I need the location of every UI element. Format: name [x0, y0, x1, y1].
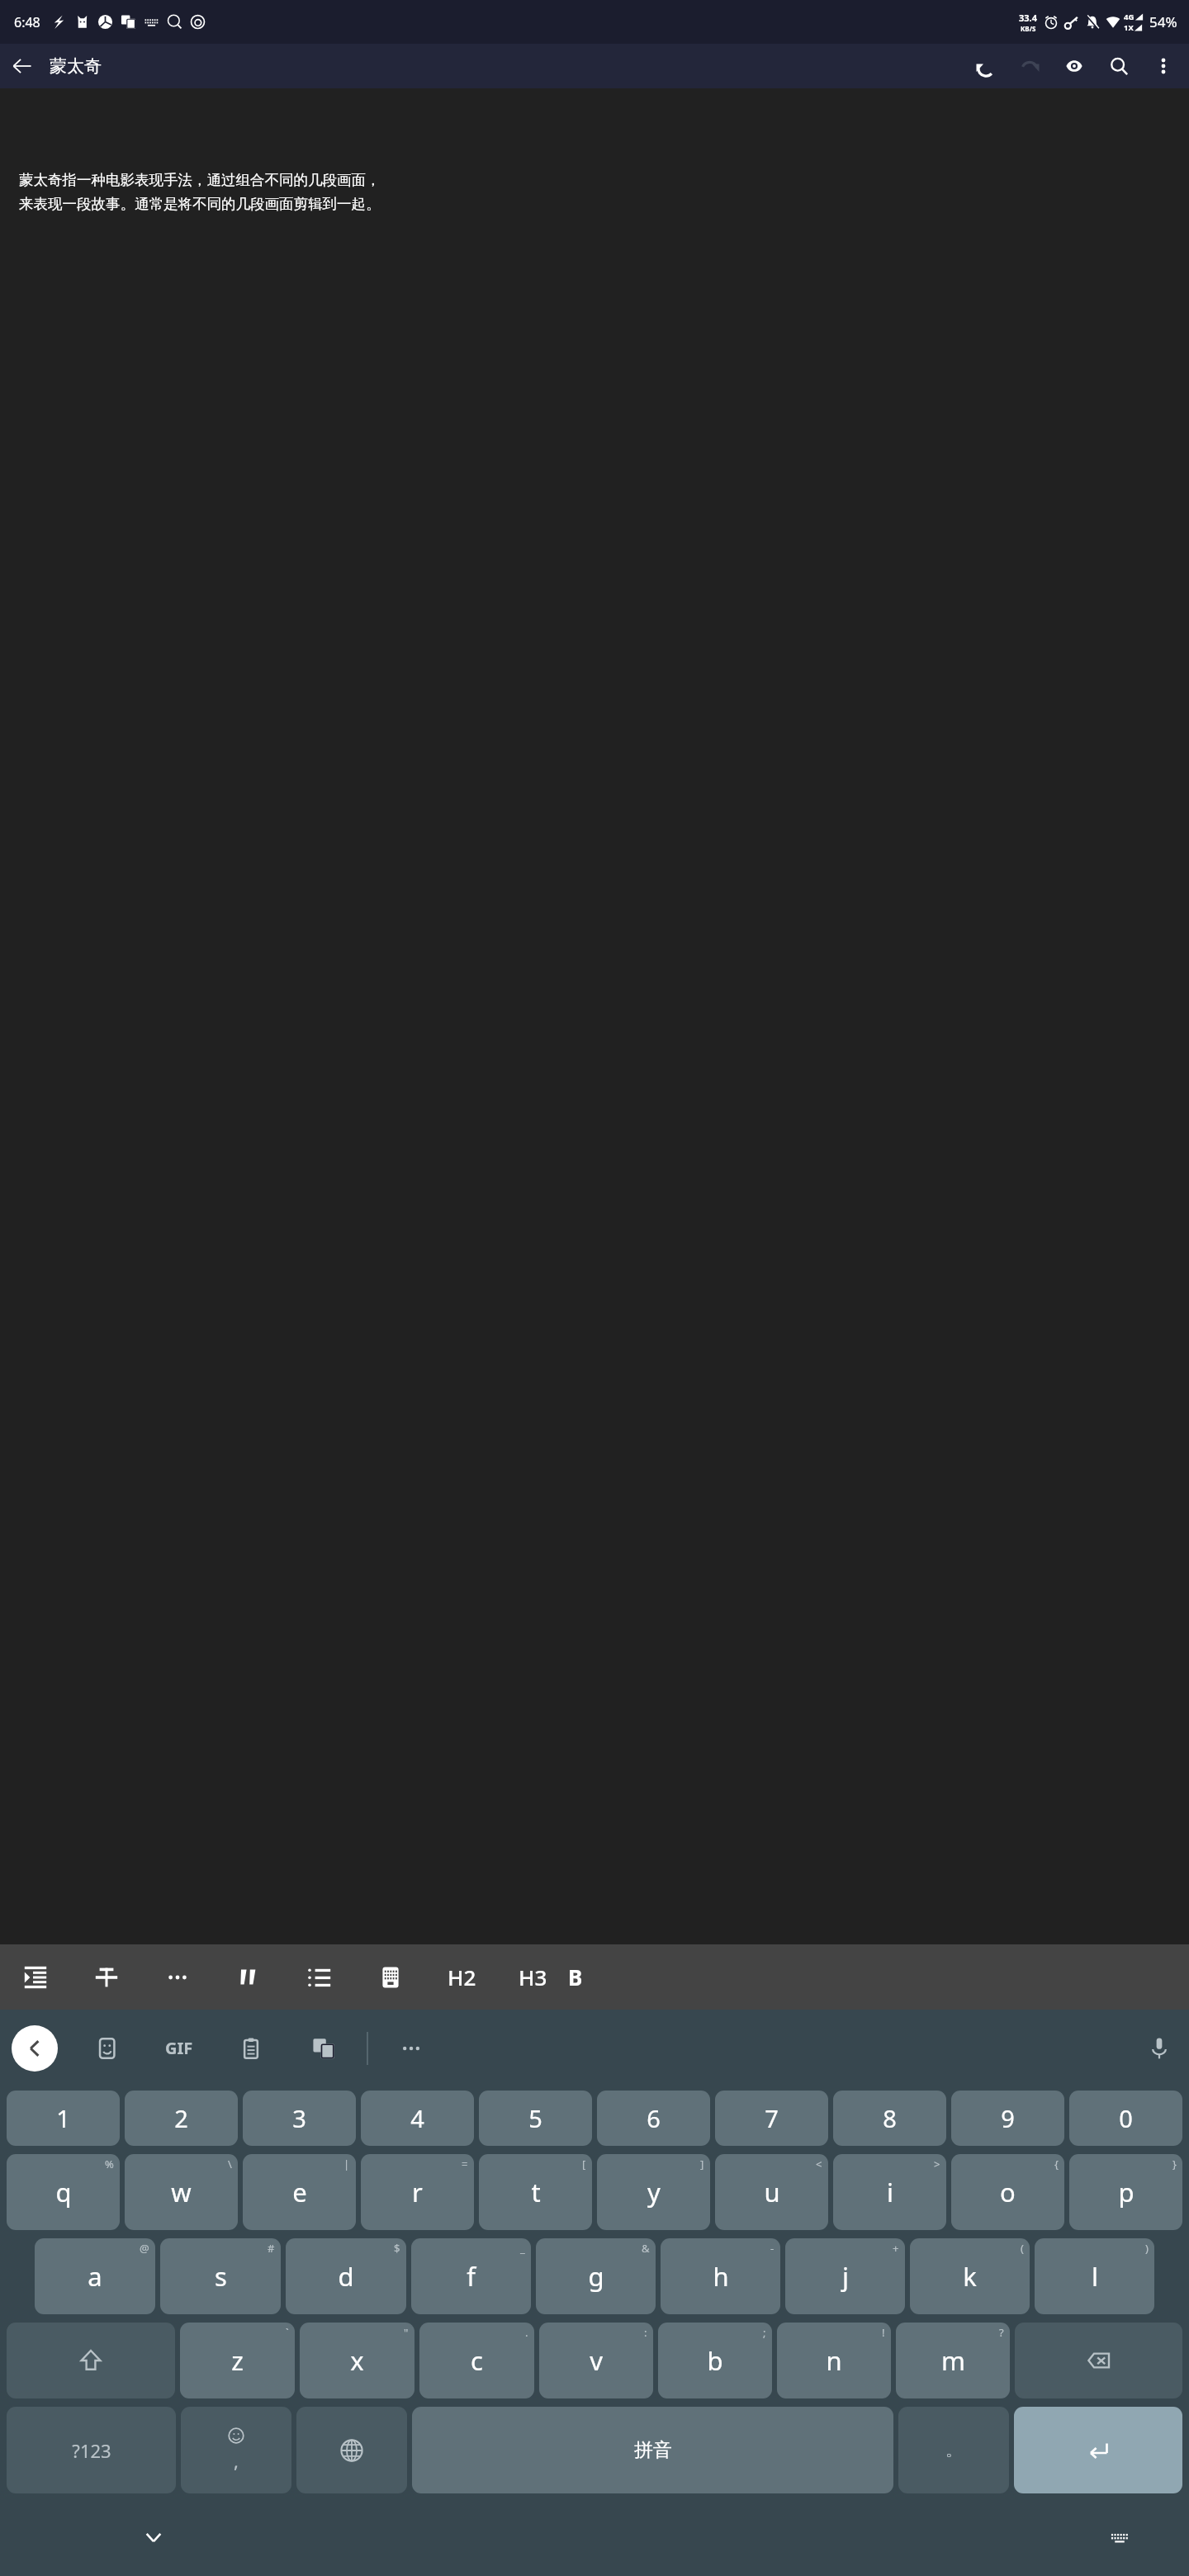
button[interactable]: s: [160, 2238, 281, 2314]
button[interactable]: Language: [296, 2407, 407, 2493]
staticText: \: [228, 2157, 232, 2171]
staticText: 。: [945, 2440, 962, 2460]
staticText: KB/S: [1021, 24, 1036, 33]
button[interactable]: 1: [7, 2091, 120, 2146]
button[interactable]: y: [597, 2154, 710, 2230]
button[interactable]: w: [125, 2154, 238, 2230]
staticText: 33.4: [1019, 12, 1037, 24]
button[interactable]: q: [7, 2154, 120, 2230]
button[interactable]: 拼音: [412, 2407, 893, 2493]
button[interactable]: Preview: [1052, 44, 1097, 88]
button[interactable]: Undo: [963, 44, 1007, 88]
staticText: }: [1172, 2157, 1177, 2171]
staticText: b: [707, 2343, 723, 2378]
button[interactable]: m: [896, 2323, 1010, 2398]
staticText: 拼音: [634, 2438, 672, 2462]
button[interactable]: k: [910, 2238, 1030, 2314]
button[interactable]: More: [393, 2030, 429, 2067]
button[interactable]: More: [142, 1944, 213, 2010]
staticText: H3: [519, 1963, 547, 1991]
button[interactable]: r: [361, 2154, 474, 2230]
staticText: g: [588, 2259, 604, 2294]
staticText: 2: [174, 2102, 188, 2134]
button[interactable]: c: [419, 2323, 534, 2398]
staticText: y: [647, 2175, 661, 2209]
button[interactable]: Redo: [1007, 44, 1052, 88]
button[interactable]: j: [785, 2238, 905, 2314]
button[interactable]: 7: [715, 2091, 828, 2146]
button[interactable]: i: [833, 2154, 946, 2230]
button[interactable]: Keyboard: [355, 1944, 426, 2010]
button[interactable]: 9: [951, 2091, 1064, 2146]
button[interactable]: GIF: [162, 2034, 197, 2062]
button[interactable]: 3: [243, 2091, 356, 2146]
staticText: .: [525, 2325, 528, 2340]
button[interactable]: Shift: [7, 2323, 175, 2398]
staticText: H2: [448, 1963, 476, 1991]
button[interactable]: 8: [833, 2091, 946, 2146]
button[interactable]: e: [243, 2154, 356, 2230]
button[interactable]: Hide keyboard: [130, 2514, 177, 2560]
button[interactable]: H2: [426, 1944, 497, 2010]
staticText: [: [582, 2157, 586, 2171]
button[interactable]: Switch keyboard: [1097, 2514, 1143, 2560]
button[interactable]: H3: [497, 1944, 568, 2010]
button[interactable]: More options: [1141, 44, 1186, 88]
staticText: r: [412, 2175, 423, 2209]
button[interactable]: h: [661, 2238, 780, 2314]
staticText: u: [764, 2175, 780, 2209]
button[interactable]: 4: [361, 2091, 474, 2146]
button[interactable]: Quote: [213, 1944, 284, 2010]
button[interactable]: 6: [597, 2091, 710, 2146]
button[interactable]: Voice input: [1141, 2030, 1177, 2067]
button[interactable]: b: [658, 2323, 772, 2398]
button[interactable]: 0: [1069, 2091, 1182, 2146]
button[interactable]: 2: [125, 2091, 238, 2146]
button[interactable]: Backspace: [1015, 2323, 1182, 2398]
button[interactable]: ?123: [7, 2407, 176, 2493]
staticText: =: [462, 2157, 468, 2171]
staticText: t: [531, 2175, 541, 2209]
button[interactable]: 。: [898, 2407, 1009, 2493]
button[interactable]: Back: [12, 2025, 58, 2072]
staticText: GIF: [165, 2037, 193, 2059]
staticText: j: [842, 2259, 849, 2294]
staticText: f: [467, 2259, 476, 2294]
staticText: 0: [1119, 2102, 1133, 2134]
staticText: e: [292, 2175, 307, 2209]
staticText: 1X: [1124, 22, 1134, 33]
button[interactable]: t: [479, 2154, 592, 2230]
button[interactable]: Back: [0, 44, 45, 88]
button[interactable]: B: [568, 1944, 604, 2010]
button[interactable]: u: [715, 2154, 828, 2230]
button[interactable]: ,: [181, 2407, 291, 2493]
button[interactable]: d: [286, 2238, 406, 2314]
button[interactable]: g: [536, 2238, 656, 2314]
button[interactable]: x: [300, 2323, 414, 2398]
button[interactable]: v: [539, 2323, 653, 2398]
button[interactable]: 5: [479, 2091, 592, 2146]
button[interactable]: Outdent: [71, 1944, 142, 2010]
staticText: i: [887, 2175, 893, 2209]
button[interactable]: Translate: [306, 2030, 342, 2067]
button[interactable]: p: [1069, 2154, 1182, 2230]
button[interactable]: Clipboard: [233, 2030, 269, 2067]
button[interactable]: o: [951, 2154, 1064, 2230]
button[interactable]: Stickers: [89, 2030, 126, 2067]
button[interactable]: f: [411, 2238, 531, 2314]
staticText: q: [55, 2175, 72, 2209]
staticText: 6:48: [14, 13, 40, 31]
staticText: @: [140, 2241, 149, 2256]
button[interactable]: n: [777, 2323, 891, 2398]
button[interactable]: a: [35, 2238, 155, 2314]
button[interactable]: Indent: [0, 1944, 71, 2010]
button[interactable]: Search: [1097, 44, 1141, 88]
staticText: n: [826, 2343, 842, 2378]
button[interactable]: l: [1035, 2238, 1154, 2314]
staticText: ?123: [72, 2438, 111, 2463]
button[interactable]: z: [180, 2323, 295, 2398]
button[interactable]: List: [284, 1944, 355, 2010]
button[interactable]: Enter: [1014, 2407, 1182, 2493]
staticText: ;: [763, 2325, 766, 2340]
staticText: c: [471, 2343, 483, 2378]
